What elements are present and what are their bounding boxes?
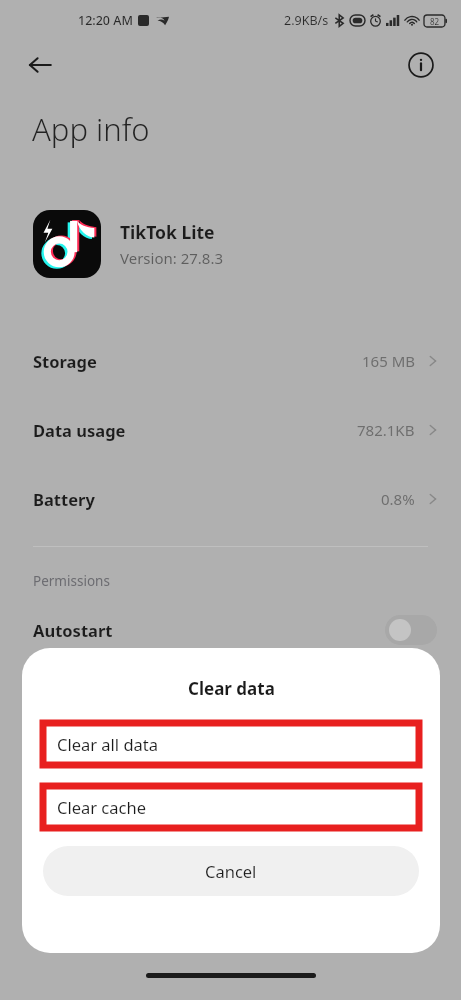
- staticText: Cancel: [205, 860, 257, 882]
- button[interactable]: Cancel: [43, 846, 419, 896]
- staticText: Clear data: [188, 677, 275, 700]
- button[interactable]: Battery: [0, 464, 461, 533]
- staticText: Data usage: [33, 419, 126, 441]
- button[interactable]: Data usage: [0, 395, 461, 464]
- staticText: 165 MB: [362, 351, 415, 371]
- button[interactable]: Storage: [0, 326, 461, 395]
- staticText: Storage: [33, 350, 97, 372]
- staticText: Permissions: [33, 572, 110, 590]
- staticText: Battery: [33, 488, 95, 510]
- button[interactable]: Clear all data: [43, 723, 419, 765]
- staticText: 12:20 AM: [78, 12, 133, 29]
- staticText: 2.9KB/s: [284, 12, 329, 29]
- button[interactable]: Back: [18, 43, 62, 87]
- button[interactable]: Clear cache: [43, 786, 419, 828]
- staticText: Clear all data: [57, 733, 159, 755]
- staticText: 0.8%: [381, 489, 415, 509]
- staticText: App info: [32, 108, 150, 150]
- staticText: TikTok Lite: [120, 220, 215, 244]
- staticText: Autostart: [33, 619, 113, 641]
- button[interactable]: App info: [401, 45, 441, 85]
- staticText: Clear cache: [57, 796, 146, 818]
- staticText: Version: 27.8.3: [120, 248, 224, 268]
- button[interactable]: Autostart: [0, 602, 461, 658]
- staticText: 82: [430, 16, 440, 27]
- staticText: 782.1KB: [357, 420, 415, 440]
